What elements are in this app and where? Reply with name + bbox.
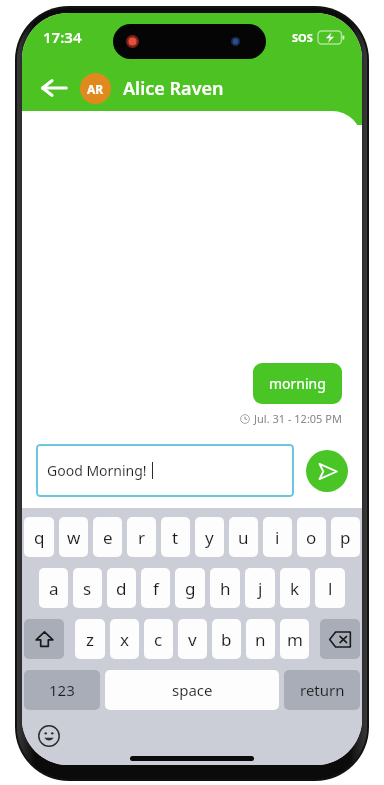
button[interactable]: s [73, 568, 102, 608]
staticText: b [221, 628, 232, 651]
staticText: 17:34 [43, 27, 82, 47]
staticText: n [255, 628, 266, 651]
staticText: a [49, 577, 59, 600]
staticText: t [172, 526, 179, 549]
button[interactable]: x [110, 619, 139, 659]
staticText: u [238, 526, 249, 549]
button[interactable]: c [144, 619, 173, 659]
staticText: return [300, 680, 345, 700]
button[interactable]: morning [253, 363, 342, 404]
staticText: g [185, 577, 196, 600]
button[interactable]: i [263, 517, 292, 557]
button[interactable]: v [178, 619, 207, 659]
staticText: m [287, 628, 303, 651]
button[interactable]: o [297, 517, 326, 557]
button[interactable]: return [284, 670, 360, 710]
staticText: z [86, 628, 94, 651]
staticText: r [138, 526, 146, 549]
button[interactable]: Emoji [34, 721, 64, 751]
staticText: i [275, 526, 280, 549]
staticText: Jul. 31 - 12:05 PM [254, 411, 342, 426]
staticText: Alice Raven [123, 76, 224, 101]
button[interactable]: u [229, 517, 258, 557]
staticText: space [172, 680, 213, 700]
button[interactable]: r [127, 517, 156, 557]
button[interactable]: h [210, 568, 240, 608]
button[interactable]: g [175, 568, 205, 608]
staticText: q [34, 526, 45, 549]
staticText: p [340, 526, 351, 549]
staticText: f [153, 577, 159, 600]
button[interactable]: Backspace [320, 619, 360, 659]
staticText: 123 [49, 680, 75, 700]
button[interactable]: e [93, 517, 122, 557]
staticText: SOS [292, 30, 313, 45]
staticText: y [205, 526, 214, 549]
staticText: Good Morning! [47, 461, 147, 480]
button[interactable]: j [245, 568, 275, 608]
button[interactable]: d [107, 568, 136, 608]
staticText: o [306, 526, 317, 549]
staticText: AR [87, 81, 104, 97]
button[interactable]: z [75, 619, 105, 659]
staticText: x [120, 628, 129, 651]
button[interactable]: w [59, 517, 88, 557]
staticText: w [67, 526, 81, 549]
button[interactable]: k [280, 568, 310, 608]
button[interactable]: p [331, 517, 360, 557]
staticText: e [103, 526, 113, 549]
staticText: c [154, 628, 163, 651]
button[interactable]: q [24, 517, 54, 557]
staticText: h [220, 577, 231, 600]
staticText: s [83, 577, 92, 600]
button[interactable]: Send [306, 450, 348, 492]
staticText: k [290, 577, 300, 600]
button[interactable]: b [212, 619, 241, 659]
staticText: l [328, 577, 333, 600]
button[interactable]: t [161, 517, 190, 557]
button[interactable]: 123 [24, 670, 100, 710]
button[interactable]: f [141, 568, 170, 608]
staticText: d [116, 577, 127, 600]
button[interactable]: AR [80, 73, 111, 104]
button[interactable]: n [246, 619, 275, 659]
staticText: morning [269, 374, 326, 393]
staticText: j [258, 577, 263, 600]
button[interactable]: m [280, 619, 309, 659]
staticText: v [188, 628, 197, 651]
button[interactable]: y [195, 517, 224, 557]
button[interactable]: Good Morning! [36, 444, 294, 497]
button[interactable]: a [39, 568, 68, 608]
button[interactable]: space [105, 670, 279, 710]
button[interactable]: Shift [24, 619, 64, 659]
button[interactable]: l [315, 568, 345, 608]
button[interactable]: Back [30, 65, 78, 111]
